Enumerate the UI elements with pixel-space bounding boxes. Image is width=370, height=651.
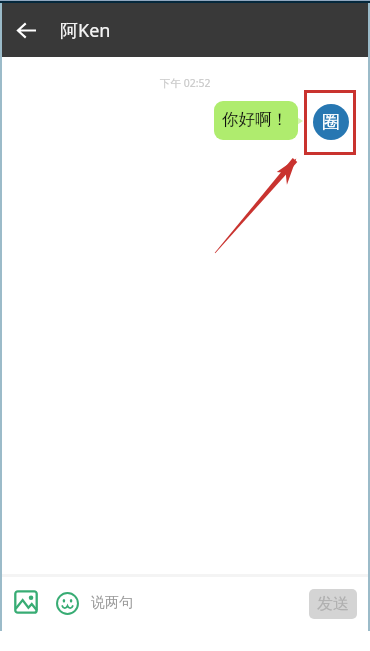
staticText: 圈 (322, 111, 340, 134)
button[interactable]: 说两句 (91, 577, 309, 631)
button[interactable]: Back (6, 10, 47, 51)
button[interactable]: 发送 (309, 589, 357, 619)
staticText: 阿Ken (60, 18, 111, 43)
button[interactable]: Avatar (313, 104, 349, 140)
button[interactable]: Emoji (54, 590, 80, 616)
staticText: 下午 02:52 (160, 76, 211, 90)
staticText: 发送 (317, 594, 349, 614)
staticText: 你好啊！ (222, 109, 288, 130)
staticText: 说两句 (91, 594, 133, 612)
button[interactable]: 你好啊！ (214, 101, 298, 140)
button[interactable]: Add image (13, 589, 39, 615)
